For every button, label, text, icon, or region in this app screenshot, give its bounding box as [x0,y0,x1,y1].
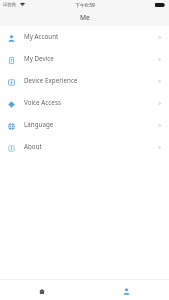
button[interactable]: Device Experience [0,70,169,92]
staticText: Device Experience [24,76,78,84]
button[interactable]: Home [0,280,84,300]
staticText: 下午6:59 [75,2,95,9]
staticText: My Device [24,54,54,62]
button[interactable]: My Device [0,48,169,70]
button[interactable]: My Account [0,26,169,48]
staticText: My Account [24,32,59,40]
button[interactable]: Voice Access [0,92,169,114]
staticText: 运营商 [3,2,16,7]
button[interactable]: Language [0,114,169,136]
button[interactable]: About [0,136,169,158]
staticText: About [24,142,42,150]
button[interactable]: Me [84,280,169,300]
staticText: Voice Access [24,98,61,106]
staticText: Language [24,120,54,128]
staticText: Me [80,13,90,22]
